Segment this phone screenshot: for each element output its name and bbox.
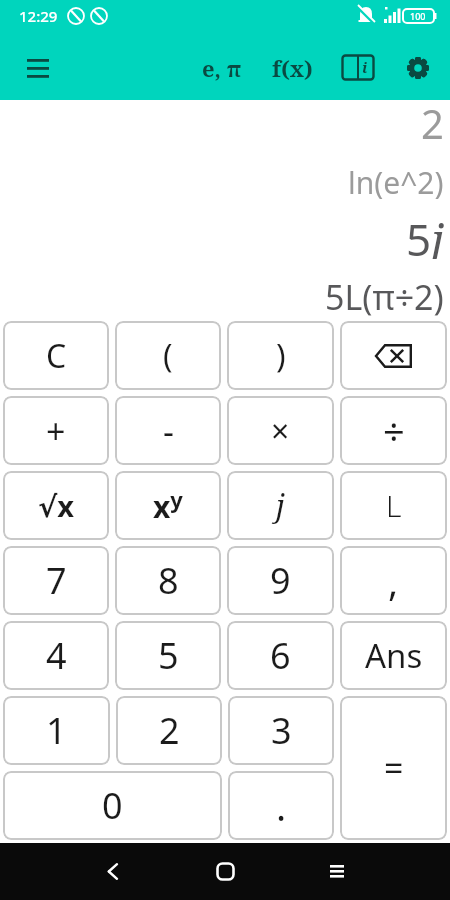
button[interactable]: xy (115, 471, 221, 540)
button[interactable]: C (3, 321, 109, 390)
staticText: Ans (365, 633, 423, 678)
button[interactable]: 7 (3, 546, 109, 615)
button[interactable]: - (115, 396, 221, 465)
staticText: = (384, 745, 404, 791)
staticText: + (46, 408, 66, 454)
button[interactable]: 4 (3, 621, 109, 690)
staticText: ln(e^2) (348, 162, 444, 203)
button[interactable]: L (340, 471, 447, 540)
button[interactable]: √x (3, 471, 109, 540)
button[interactable]: × (227, 396, 334, 465)
staticText: 1 (46, 706, 67, 755)
staticText: - (163, 408, 174, 454)
button[interactable] (396, 46, 440, 90)
button[interactable]: 9 (227, 546, 334, 615)
button[interactable]: f(x) (268, 46, 316, 90)
staticText: i (362, 57, 368, 77)
staticText: e, π (202, 53, 242, 83)
button[interactable]: . (228, 771, 334, 840)
button[interactable] (16, 46, 60, 90)
button[interactable] (89, 847, 137, 895)
staticText: 7 (46, 556, 67, 605)
button[interactable]: i (336, 46, 380, 90)
staticText: 6 (270, 631, 291, 680)
staticText: ÷ (383, 405, 405, 457)
button[interactable] (201, 847, 249, 895)
staticText: 5L(π÷2) (325, 274, 444, 320)
button[interactable] (313, 847, 361, 895)
staticText: 0 (102, 781, 123, 830)
staticText: j (276, 485, 285, 526)
staticText: ( (163, 334, 173, 378)
staticText: 12:29 (19, 6, 58, 26)
button[interactable]: 3 (228, 696, 334, 765)
button[interactable]: ) (227, 321, 334, 390)
staticText: f(x) (272, 53, 313, 83)
staticText: 100 (410, 10, 426, 22)
staticText: 2 (159, 706, 180, 755)
button[interactable]: 2 (116, 696, 222, 765)
staticText: 9 (270, 556, 291, 605)
button[interactable]: 5 (115, 621, 221, 690)
button[interactable]: Ans (340, 621, 447, 690)
staticText: 4 (46, 631, 67, 680)
staticText: 2 (421, 96, 444, 142)
button[interactable]: 0 (3, 771, 222, 840)
button[interactable]: j (227, 471, 334, 540)
staticText: , (388, 555, 399, 607)
staticText: 5j (406, 209, 444, 259)
staticText: 5 (158, 631, 179, 680)
staticText: L (386, 485, 402, 526)
button[interactable]: e, π (194, 46, 250, 90)
staticText: √x (38, 486, 75, 525)
button[interactable]: ( (115, 321, 221, 390)
button[interactable]: ÷ (340, 396, 447, 465)
button[interactable]: 8 (115, 546, 221, 615)
staticText: 3 (271, 706, 292, 755)
staticText: . (276, 780, 287, 832)
staticText: × (271, 409, 290, 453)
staticText: ) (276, 334, 286, 378)
button[interactable]: + (3, 396, 109, 465)
button[interactable]: 1 (3, 696, 110, 765)
staticText: C (46, 334, 67, 378)
button[interactable] (340, 321, 447, 390)
button[interactable]: , (340, 546, 447, 615)
staticText: 8 (158, 556, 179, 605)
button[interactable]: 6 (227, 621, 334, 690)
button[interactable]: = (340, 696, 447, 840)
staticText: xy (153, 484, 183, 527)
